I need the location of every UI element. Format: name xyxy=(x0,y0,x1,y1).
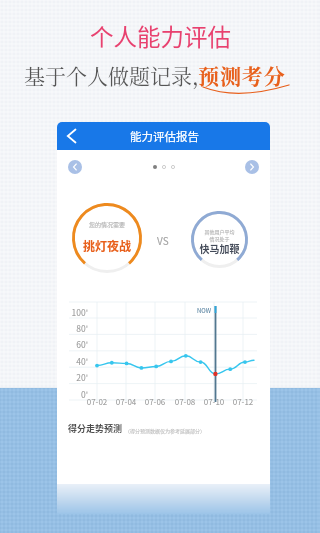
staticText: 100' xyxy=(57,306,88,318)
staticText: 预测考分 xyxy=(198,60,286,90)
staticText: 快马加鞭 xyxy=(191,241,248,255)
staticText: 个人能力评估 xyxy=(90,19,231,53)
staticText: 20' xyxy=(57,371,88,383)
staticText: 80' xyxy=(57,322,88,334)
staticText: 其他用户平均 情况处于 xyxy=(191,228,248,242)
staticText: 07-12 xyxy=(229,396,257,408)
staticText: 挑灯夜战 xyxy=(72,237,142,254)
staticText: NOW xyxy=(197,306,212,315)
staticText: （得分预测数据仅为参考延展部分） xyxy=(125,427,206,434)
staticText: 得分走势预测 xyxy=(68,422,123,435)
button[interactable]: Previous page xyxy=(68,160,82,174)
staticText: VS xyxy=(157,233,169,247)
button[interactable]: Back xyxy=(59,122,83,150)
staticText: 40' xyxy=(57,355,88,367)
staticText: 07-06 xyxy=(141,396,169,408)
staticText: 07-08 xyxy=(171,396,199,408)
staticText: 07-02 xyxy=(83,396,111,408)
staticText: 能力评估报告 xyxy=(130,128,199,145)
staticText: 60' xyxy=(57,338,88,350)
staticText: 07-10 xyxy=(200,396,228,408)
staticText: 07-04 xyxy=(112,396,140,408)
staticText: 0' xyxy=(57,388,88,400)
button[interactable]: Next page xyxy=(245,160,259,174)
staticText: 基于个人做题记录， xyxy=(24,60,213,90)
staticText: 您的情况需要 xyxy=(72,220,142,229)
